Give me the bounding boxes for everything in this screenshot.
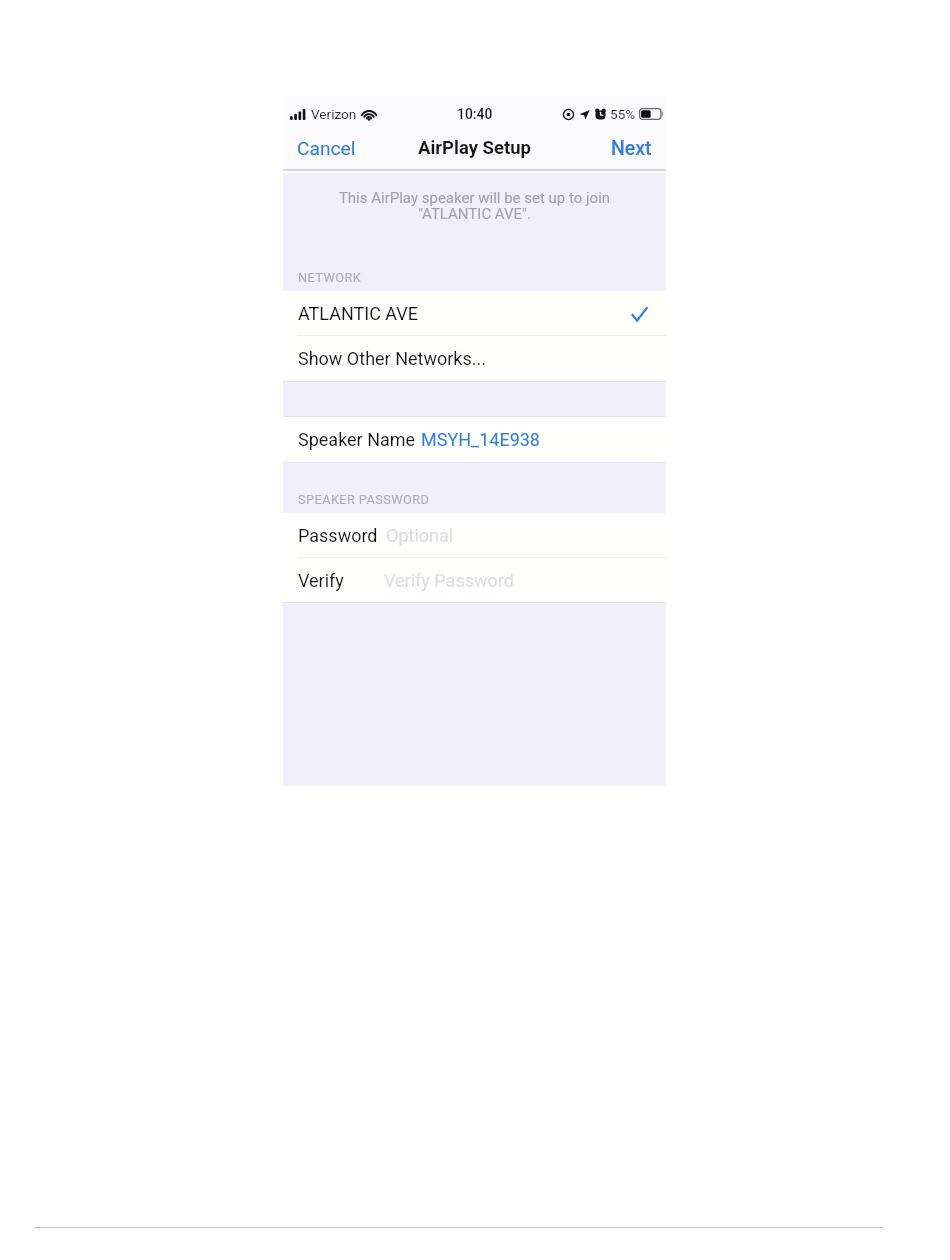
other: Selected network: [631, 306, 648, 323]
staticText: SPEAKER PASSWORD: [298, 492, 430, 507]
button[interactable]: Next: [597, 129, 666, 168]
staticText: 10:40: [457, 106, 493, 122]
staticText: 55%: [610, 106, 636, 122]
button[interactable]: Password: [283, 513, 666, 557]
staticText: Next: [611, 137, 652, 160]
button[interactable]: Show Other Networks...: [283, 336, 666, 381]
staticText: This AirPlay speaker will be set up to j…: [283, 189, 666, 222]
button[interactable]: Verify: [283, 558, 666, 602]
staticText: Cancel: [297, 137, 356, 160]
button[interactable]: ATLANTIC AVE: [283, 291, 666, 335]
staticText: ATLANTIC AVE: [298, 303, 419, 324]
staticText: Show Other Networks...: [298, 348, 486, 369]
staticText: MSYH_14E938: [421, 429, 540, 450]
button[interactable]: Speaker Name: [283, 417, 666, 462]
staticText: Verify: [298, 570, 344, 591]
staticText: Password: [298, 525, 378, 546]
staticText: Verify Password: [384, 570, 514, 591]
staticText: NETWORK: [298, 270, 362, 285]
staticText: AirPlay Setup: [418, 137, 532, 159]
staticText: Verizon: [311, 106, 357, 122]
button[interactable]: Cancel: [283, 129, 370, 168]
staticText: Speaker Name: [298, 429, 416, 450]
staticText: Optional: [386, 525, 454, 546]
